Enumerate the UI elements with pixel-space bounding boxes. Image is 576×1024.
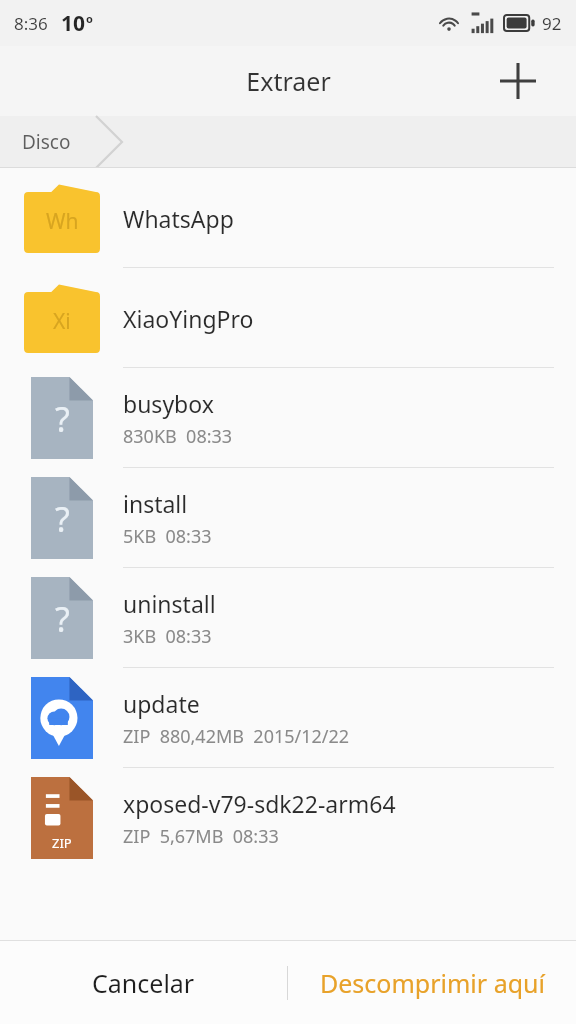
button[interactable]: Disco: [0, 116, 576, 168]
staticText: Wh: [46, 207, 79, 236]
button[interactable]: Xi: [0, 268, 576, 368]
staticText: ZIP: [52, 834, 72, 852]
staticText: ?: [55, 596, 70, 642]
staticText: XiaoYingPro: [123, 303, 254, 334]
button[interactable]: Add: [496, 59, 540, 103]
button[interactable]: Wh: [0, 168, 576, 268]
staticText: update: [123, 688, 200, 719]
staticText: Disco: [22, 129, 71, 155]
button[interactable]: ?: [0, 468, 576, 568]
button[interactable]: update: [0, 668, 576, 768]
staticText: 830KB 08:33: [123, 424, 233, 449]
staticText: install: [123, 488, 188, 519]
staticText: Xi: [53, 307, 71, 336]
button[interactable]: Descomprimir aquí: [288, 941, 576, 1024]
staticText: Cancelar: [92, 966, 195, 1000]
staticText: ZIP 5,67MB 08:33: [123, 824, 279, 849]
button[interactable]: Cancelar: [0, 941, 287, 1024]
staticText: ?: [55, 496, 70, 542]
staticText: o: [86, 11, 93, 26]
staticText: uninstall: [123, 588, 216, 619]
staticText: 8:36: [14, 12, 48, 35]
staticText: WhatsApp: [123, 203, 234, 234]
staticText: 10: [61, 9, 86, 38]
staticText: busybox: [123, 388, 214, 419]
button[interactable]: ?: [0, 568, 576, 668]
staticText: ZIP 880,42MB 2015/12/22: [123, 724, 350, 749]
staticText: ?: [55, 396, 70, 442]
staticText: 5KB 08:33: [123, 524, 212, 549]
button[interactable]: ?: [0, 368, 576, 468]
staticText: 92: [542, 12, 562, 35]
button[interactable]: ZIP: [0, 768, 576, 868]
staticText: 3KB 08:33: [123, 624, 212, 649]
staticText: Extraer: [246, 64, 331, 98]
staticText: Descomprimir aquí: [320, 966, 545, 1000]
staticText: xposed-v79-sdk22-arm64: [123, 788, 396, 819]
